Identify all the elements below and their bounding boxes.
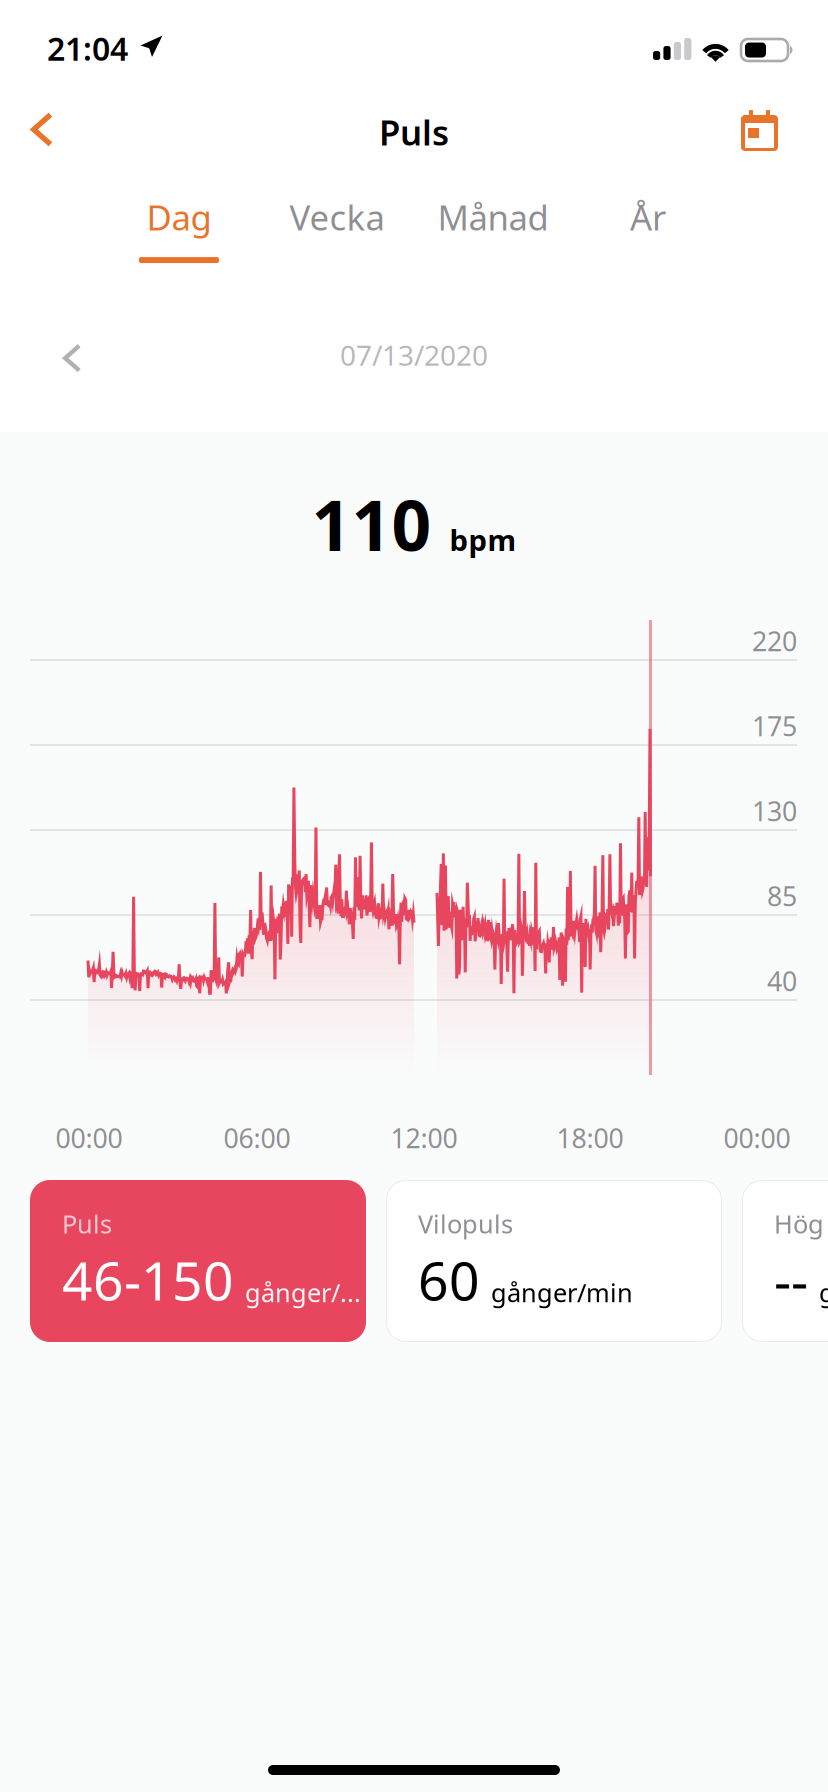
staticText: 220 (752, 623, 797, 659)
staticText: 12:00 (390, 1120, 457, 1156)
button[interactable]: Månad (408, 176, 578, 296)
button[interactable]: Puls (30, 1180, 366, 1342)
staticText: År (630, 194, 666, 240)
staticText: 46-150 (62, 1244, 234, 1315)
staticText: gånger/min (491, 1276, 633, 1309)
button[interactable]: Hög (742, 1180, 828, 1342)
staticText: gånger/min (819, 1276, 828, 1309)
staticText: 85 (767, 878, 797, 914)
staticText: 40 (767, 963, 797, 999)
staticText: Månad (437, 194, 548, 240)
staticText: 130 (752, 793, 797, 829)
staticText: 06:00 (223, 1120, 290, 1156)
staticText: 00:00 (55, 1120, 122, 1156)
staticText: -- (774, 1244, 808, 1315)
button[interactable]: Vecka (257, 176, 417, 296)
button[interactable]: Back (7, 88, 77, 171)
button[interactable]: Previous day (33, 317, 111, 398)
staticText: 21:04 (47, 27, 128, 69)
staticText: Vecka (289, 194, 384, 240)
staticText: Hög (774, 1207, 824, 1240)
staticText: 18:00 (556, 1120, 623, 1156)
staticText: 00:00 (723, 1120, 790, 1156)
button[interactable]: Dag (109, 176, 249, 296)
staticText: gånger/... (245, 1276, 361, 1309)
staticText: 175 (752, 708, 797, 744)
staticText: Puls (62, 1207, 112, 1240)
staticText: 60 (418, 1244, 480, 1315)
staticText: 07/13/2020 (340, 336, 488, 374)
staticText: Puls (379, 109, 449, 155)
staticText: bpm (449, 520, 516, 559)
button[interactable]: År (583, 176, 713, 296)
button[interactable]: Vilopuls (386, 1180, 722, 1342)
button[interactable]: Calendar (719, 88, 800, 173)
staticText: Dag (146, 194, 211, 240)
staticText: 110 (311, 478, 431, 570)
staticText: Vilopuls (418, 1207, 513, 1240)
